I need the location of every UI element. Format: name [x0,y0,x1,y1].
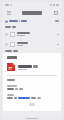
button[interactable]: Menu [5,9,12,16]
button[interactable] [7,63,57,71]
button[interactable] [5,40,59,48]
button[interactable] [5,18,59,24]
button[interactable] [7,97,41,99]
button[interactable] [5,30,59,38]
button[interactable] [14,9,50,17]
button[interactable]: Close [29,103,35,106]
button[interactable]: More options [52,9,59,16]
